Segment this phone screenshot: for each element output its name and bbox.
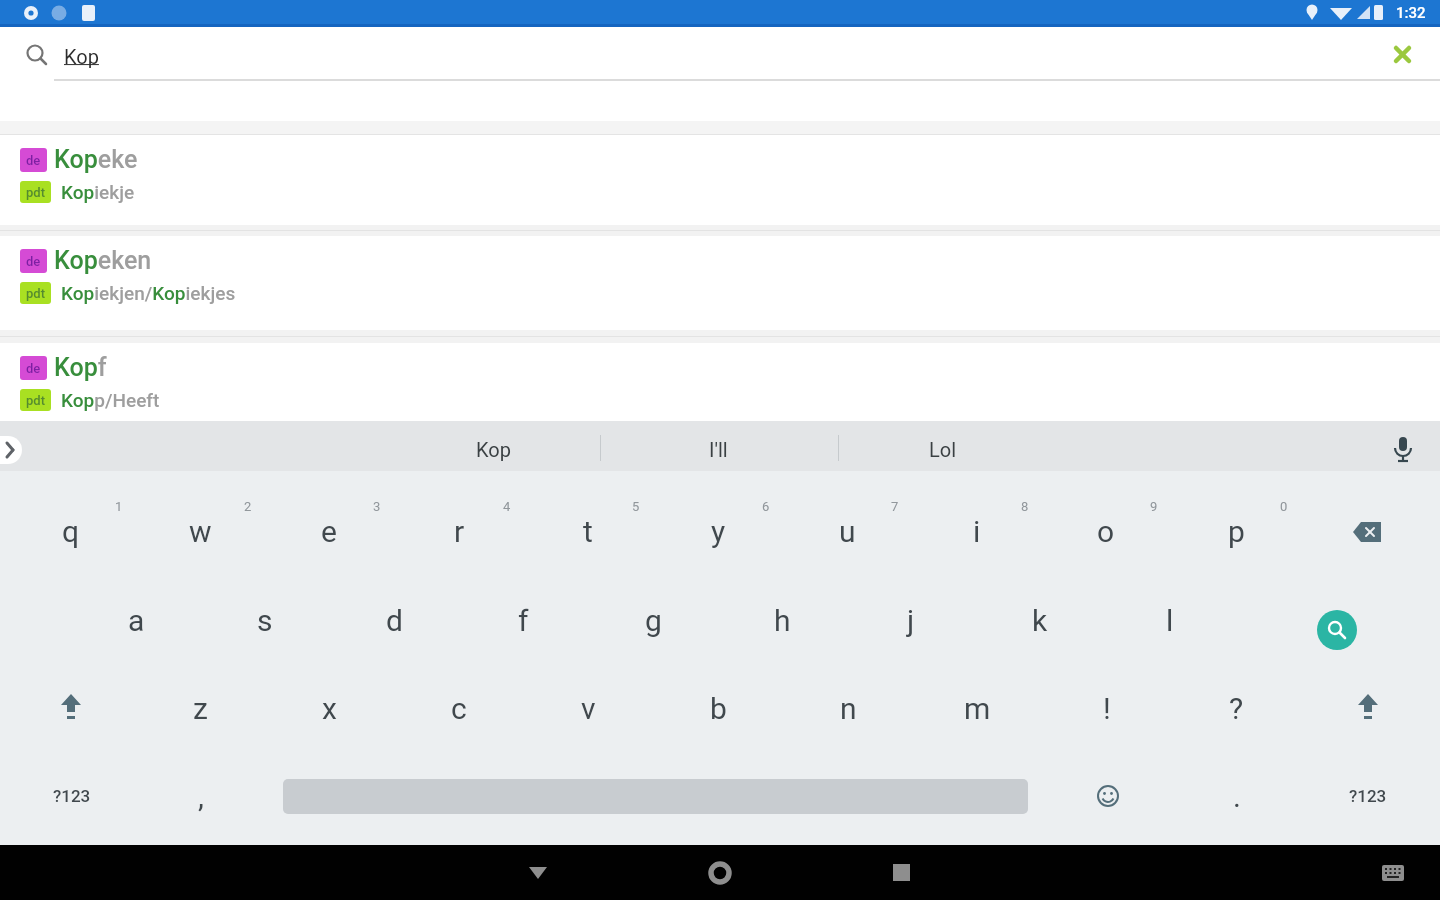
button[interactable]: y bbox=[678, 507, 758, 555]
button[interactable]: de bbox=[0, 343, 1440, 421]
button[interactable] bbox=[1354, 694, 1382, 722]
button[interactable]: c bbox=[419, 684, 499, 732]
button[interactable]: f bbox=[483, 596, 563, 644]
staticText: 9 bbox=[1150, 499, 1158, 514]
button[interactable]: ?123 bbox=[1328, 772, 1408, 820]
staticText: Kopp/Heeft bbox=[61, 389, 160, 411]
staticText: pdt bbox=[26, 393, 45, 408]
button[interactable]: u bbox=[807, 507, 887, 555]
staticText: de bbox=[26, 361, 41, 376]
button[interactable]: w bbox=[160, 507, 240, 555]
staticText: u bbox=[839, 514, 856, 549]
staticText: h bbox=[774, 603, 791, 638]
button[interactable] bbox=[708, 861, 732, 885]
button[interactable]: a bbox=[96, 596, 176, 644]
button[interactable]: z bbox=[160, 684, 240, 732]
button[interactable]: x bbox=[289, 684, 369, 732]
button[interactable]: e bbox=[289, 507, 369, 555]
staticText: de bbox=[26, 254, 41, 269]
button[interactable]: t bbox=[548, 507, 628, 555]
staticText: 5 bbox=[632, 499, 640, 514]
staticText: i bbox=[973, 514, 981, 549]
button[interactable] bbox=[1096, 784, 1120, 808]
button[interactable] bbox=[1317, 610, 1357, 650]
staticText: . bbox=[1233, 779, 1241, 814]
button[interactable]: j bbox=[871, 596, 951, 644]
staticText: de bbox=[26, 153, 41, 168]
button[interactable]: d bbox=[354, 596, 434, 644]
staticText: k bbox=[1032, 603, 1048, 638]
button[interactable]: s bbox=[225, 596, 305, 644]
staticText: g bbox=[645, 603, 662, 638]
button[interactable]: ? bbox=[1196, 684, 1276, 732]
staticText: a bbox=[128, 603, 145, 638]
staticText: 0 bbox=[1280, 499, 1288, 514]
button[interactable]: ! bbox=[1067, 684, 1147, 732]
staticText: Kopeken bbox=[54, 246, 152, 275]
button[interactable] bbox=[1382, 865, 1404, 881]
button[interactable]: h bbox=[742, 596, 822, 644]
button[interactable]: Kop bbox=[64, 45, 99, 68]
button[interactable]: , bbox=[161, 772, 241, 820]
staticText: t bbox=[583, 514, 593, 549]
button[interactable] bbox=[1394, 46, 1411, 63]
button[interactable]: q bbox=[31, 507, 111, 555]
staticText: v bbox=[581, 691, 596, 726]
staticText: n bbox=[840, 691, 857, 726]
staticText: z bbox=[193, 691, 208, 726]
staticText: c bbox=[451, 691, 467, 726]
staticText: Kopf bbox=[54, 353, 107, 382]
staticText: b bbox=[710, 691, 727, 726]
button[interactable]: r bbox=[419, 507, 499, 555]
staticText: 7 bbox=[891, 499, 899, 514]
button[interactable]: p bbox=[1196, 507, 1276, 555]
button[interactable]: n bbox=[808, 684, 888, 732]
button[interactable]: v bbox=[548, 684, 628, 732]
staticText: 2 bbox=[244, 499, 252, 514]
button[interactable]: l bbox=[1130, 596, 1210, 644]
staticText: r bbox=[454, 514, 465, 549]
staticText: o bbox=[1097, 514, 1115, 549]
button[interactable]: ?123 bbox=[32, 772, 112, 820]
button[interactable]: I'll bbox=[618, 424, 818, 474]
staticText: q bbox=[62, 514, 80, 549]
staticText: I'll bbox=[709, 438, 728, 461]
button[interactable] bbox=[0, 436, 22, 464]
button[interactable] bbox=[57, 694, 85, 722]
button[interactable] bbox=[1352, 521, 1384, 543]
button[interactable] bbox=[528, 866, 548, 880]
staticText: pdt bbox=[26, 185, 45, 200]
staticText: ! bbox=[1103, 691, 1111, 726]
staticText: , bbox=[198, 779, 204, 814]
button[interactable]: Kop bbox=[393, 424, 593, 474]
staticText: p bbox=[1228, 514, 1245, 549]
staticText: w bbox=[189, 514, 212, 549]
staticText: l bbox=[1166, 603, 1174, 638]
button[interactable]: o bbox=[1066, 507, 1146, 555]
staticText: 8 bbox=[1021, 499, 1029, 514]
button[interactable]: k bbox=[1000, 596, 1080, 644]
staticText: s bbox=[257, 603, 273, 638]
staticText: Lol bbox=[929, 438, 957, 461]
staticText: y bbox=[711, 514, 726, 549]
staticText: f bbox=[518, 603, 529, 638]
button[interactable]: b bbox=[678, 684, 758, 732]
staticText: e bbox=[321, 514, 337, 549]
button[interactable]: i bbox=[937, 507, 1017, 555]
button[interactable]: de bbox=[0, 236, 1440, 330]
staticText: 6 bbox=[762, 499, 770, 514]
staticText: j bbox=[907, 603, 915, 638]
button[interactable]: g bbox=[613, 596, 693, 644]
staticText: 3 bbox=[373, 499, 381, 514]
staticText: Kopiekje bbox=[61, 181, 135, 203]
button[interactable] bbox=[1391, 436, 1415, 464]
button[interactable]: Lol bbox=[843, 424, 1043, 474]
staticText: 1 bbox=[115, 499, 123, 514]
button[interactable]: m bbox=[937, 684, 1017, 732]
button[interactable]: de bbox=[0, 135, 1440, 225]
staticText: Kopeke bbox=[54, 145, 138, 174]
button[interactable]: . bbox=[1197, 772, 1277, 820]
staticText: ? bbox=[1229, 691, 1244, 726]
